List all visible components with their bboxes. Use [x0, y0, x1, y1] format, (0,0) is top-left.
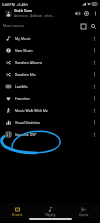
staticText: Sixth Ears: [14, 8, 33, 13]
button[interactable]: Volume: [73, 9, 82, 18]
button[interactable]: More options: [90, 46, 98, 54]
button[interactable]: Browse: [0, 203, 34, 218]
staticText: Squeeze DSP: [15, 132, 90, 137]
button[interactable]: More options: [90, 70, 98, 78]
button[interactable]: Change layout: [79, 22, 88, 31]
button[interactable]: LastMix: [0, 80, 100, 92]
button[interactable]: More options: [90, 94, 98, 102]
button[interactable]: Squeeze DSP: [0, 128, 100, 140]
button[interactable]: Search: [89, 22, 98, 31]
button[interactable]: New Music: [0, 44, 100, 56]
staticText: 5:44 PM +5.48/s: [2, 2, 29, 7]
button[interactable]: Random Mix: [0, 68, 100, 80]
staticText: Queue: [79, 213, 89, 217]
staticText: Favorites: [15, 96, 90, 101]
button[interactable]: Visual Statistics: [0, 116, 100, 128]
staticText: Ascension - Addnowl - select...: [14, 14, 55, 18]
staticText: Visual Statistics: [15, 120, 90, 125]
button[interactable]: More options: [90, 58, 98, 66]
staticText: My Music: [15, 36, 90, 41]
staticText: Playing: [45, 213, 56, 217]
staticText: Music Walk With Me: [15, 108, 90, 113]
button[interactable]: More options: [90, 82, 98, 90]
button[interactable]: More options: [90, 130, 98, 138]
staticText: LastMix: [15, 84, 90, 89]
staticText: Music sources: [3, 24, 25, 28]
button[interactable]: Cast to device: [82, 9, 91, 18]
button[interactable]: More options: [90, 118, 98, 126]
button[interactable]: More options: [90, 106, 98, 114]
staticText: Random Albums: [15, 60, 90, 65]
staticText: Browse: [12, 213, 23, 217]
button[interactable]: Favorites: [0, 92, 100, 104]
button[interactable]: Queue: [67, 203, 100, 218]
button[interactable]: My Music: [0, 32, 100, 44]
staticText: New Music: [15, 48, 90, 53]
button[interactable]: Playing: [34, 203, 67, 218]
button[interactable]: Music Walk With Me: [0, 104, 100, 116]
button[interactable]: More options: [90, 34, 98, 42]
staticText: Random Mix: [15, 72, 90, 77]
button[interactable]: Random Albums: [0, 56, 100, 68]
button[interactable]: More options: [91, 9, 99, 17]
